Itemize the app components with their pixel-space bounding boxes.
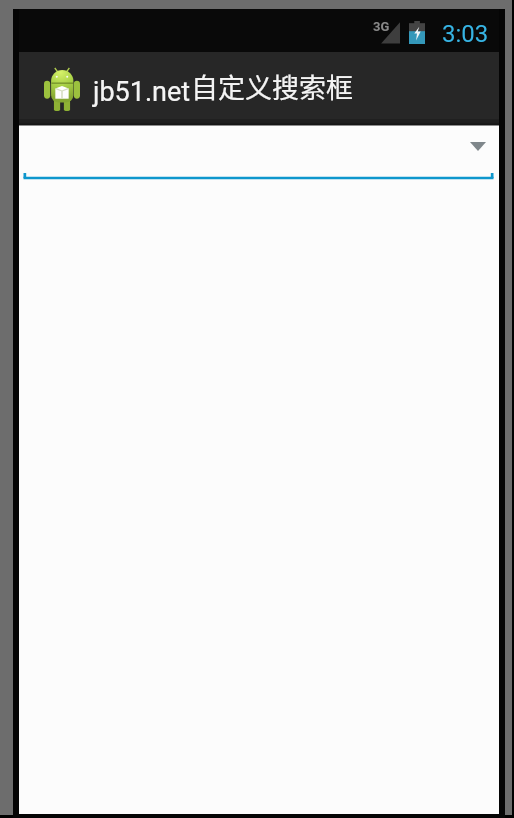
staticText: 3:03 [442,20,489,48]
staticText: jb51.net [93,76,191,108]
staticText: 3G [373,19,390,34]
button[interactable]: jb51.net [19,52,499,119]
staticText: 自定义搜索框 [191,67,353,106]
button[interactable]: Search category dropdown [19,126,499,184]
